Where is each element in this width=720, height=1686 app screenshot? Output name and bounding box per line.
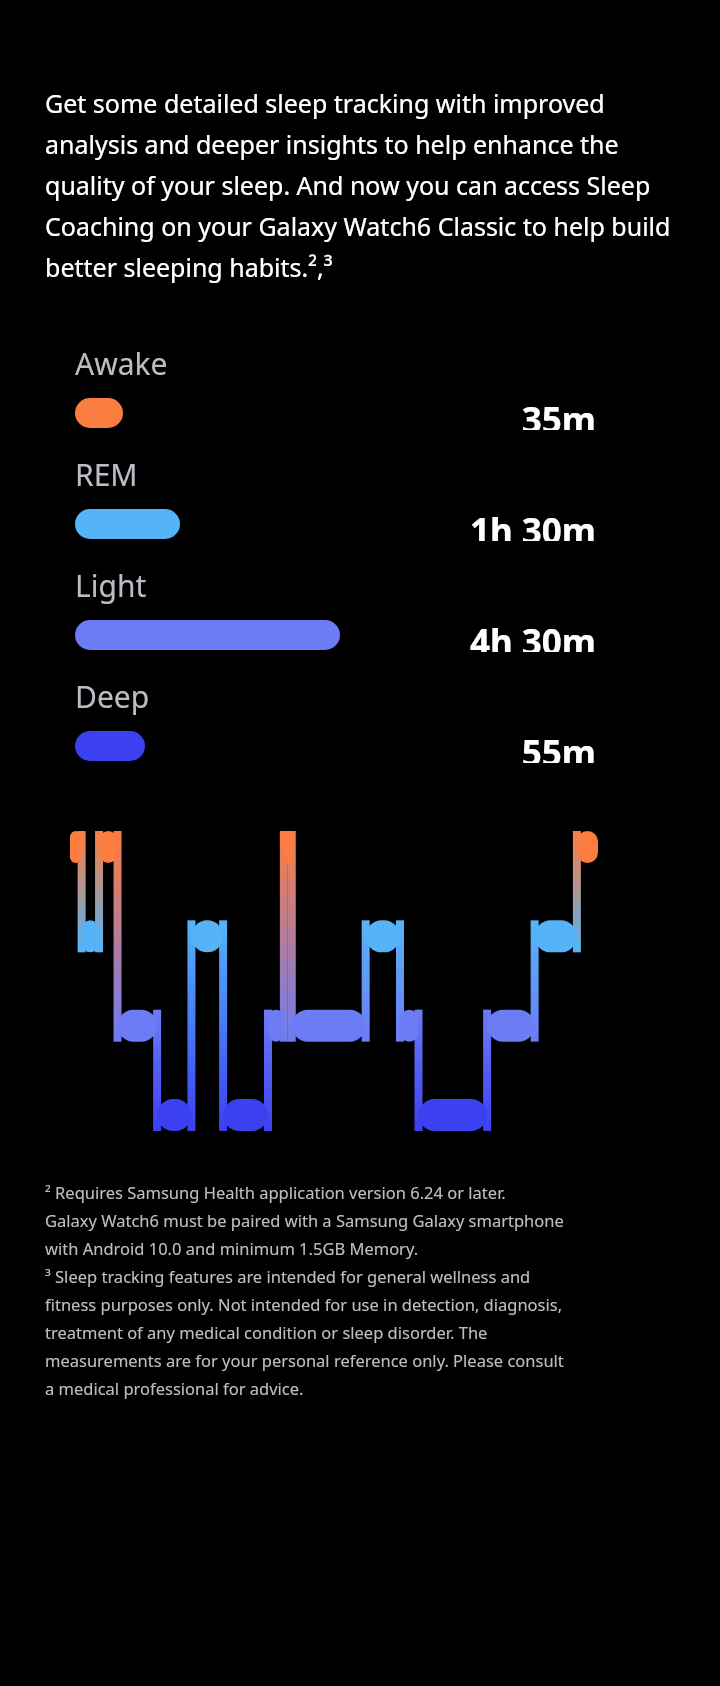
button[interactable]: Deep: [0, 676, 720, 787]
staticText: 55m: [0, 729, 596, 763]
staticText: REM: [75, 454, 138, 495]
staticText: Awake: [75, 343, 168, 384]
staticText: 4h 30m: [0, 618, 596, 652]
button[interactable]: REM: [0, 454, 720, 565]
button[interactable]: Light: [0, 565, 720, 676]
staticText: 35m: [0, 396, 596, 430]
staticText: Light: [75, 565, 147, 606]
staticText: Get some detailed sleep tracking with im…: [45, 86, 700, 285]
staticText: Deep: [75, 676, 150, 717]
staticText: 1h 30m: [0, 507, 596, 541]
staticText: ² Requires Samsung Health application ve…: [45, 1181, 706, 1400]
button[interactable]: Awake: [0, 343, 720, 454]
